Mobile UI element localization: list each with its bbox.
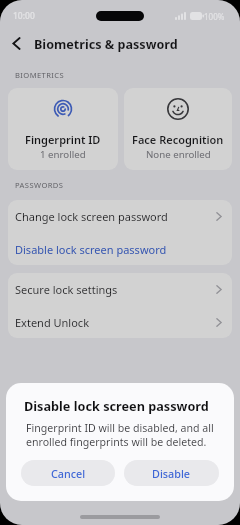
staticText: None enrolled [146,148,211,161]
staticText: Cancel [51,466,86,481]
button[interactable]: Secure lock settings [8,273,232,306]
staticText: Secure lock settings [15,282,118,297]
staticText: Fingerprint ID [25,132,101,147]
button[interactable]: Disable [124,460,219,486]
button[interactable]: Change lock screen password [8,200,232,233]
staticText: BIOMETRICS [15,70,65,80]
staticText: PASSWORDS [15,180,64,190]
button[interactable] [12,37,21,50]
staticText: Disable [152,466,191,481]
staticText: Biometrics & password [34,36,178,53]
staticText: 100% [204,11,225,22]
button[interactable]: Cancel [21,460,115,486]
staticText: 1 enrolled [40,148,86,161]
button[interactable]: Disable lock screen password [8,233,232,265]
staticText: Disable lock screen password [15,242,167,257]
staticText: Fingerprint ID will be disabled, and all… [26,421,214,449]
staticText: 10:00 [13,10,35,22]
staticText: Change lock screen password [15,209,168,224]
staticText: Face Recognition [132,132,224,147]
button[interactable]: Extend Unlock [8,306,232,338]
staticText: Disable lock screen password [24,397,209,414]
button[interactable]: Face Recognition [124,88,232,170]
button[interactable]: Fingerprint ID [8,88,118,170]
staticText: Extend Unlock [15,315,90,330]
